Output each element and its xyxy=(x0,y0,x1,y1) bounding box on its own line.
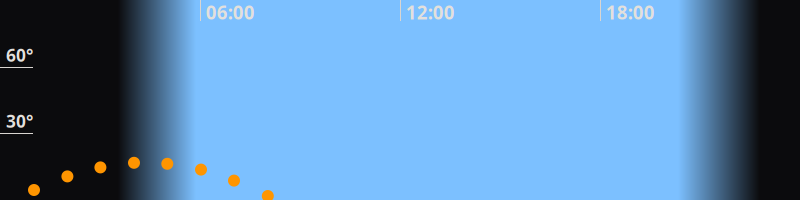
button[interactable]: Hourly temperature chart xyxy=(0,0,800,200)
staticText: 30° xyxy=(6,109,33,132)
staticText: 18:00 xyxy=(606,0,655,25)
staticText: 60° xyxy=(6,43,33,66)
staticText: 12:00 xyxy=(406,0,455,25)
staticText: 06:00 xyxy=(206,0,255,25)
